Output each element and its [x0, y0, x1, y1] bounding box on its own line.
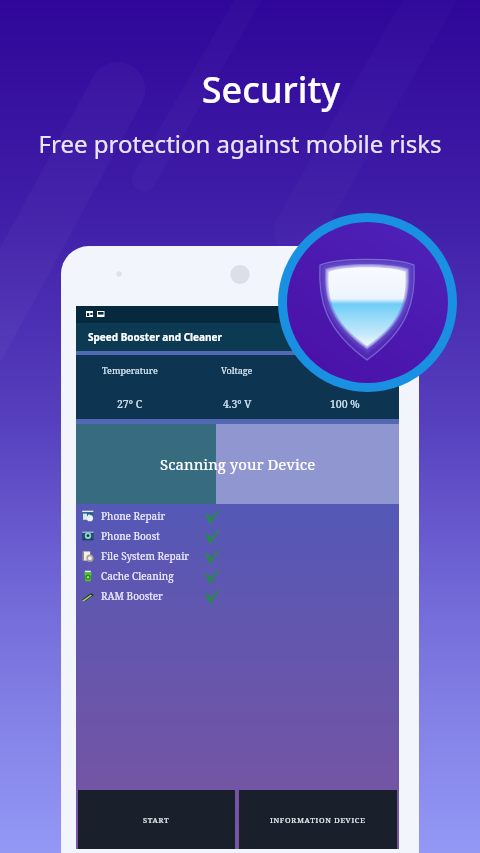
button[interactable]: Speed Booster and Cleaner: [76, 323, 399, 351]
button[interactable]: Security shield: [278, 213, 457, 392]
staticText: 4.3° V: [223, 397, 252, 411]
button[interactable]: RAM Booster: [76, 586, 399, 606]
button[interactable]: 100 %: [291, 355, 399, 419]
staticText: RAM Booster: [101, 589, 163, 603]
staticText: Temperature: [102, 364, 158, 376]
staticText: START: [143, 815, 170, 825]
staticText: Security: [31, 65, 480, 114]
staticText: Phone Repair: [101, 509, 166, 523]
staticText: 100 %: [330, 397, 360, 411]
button[interactable]: Temperature: [76, 355, 183, 419]
button[interactable]: Cache Cleaning: [76, 566, 399, 586]
staticText: Cache Cleaning: [101, 569, 174, 583]
button[interactable]: File System Repair: [76, 546, 399, 566]
staticText: Voltage: [221, 364, 253, 376]
staticText: Free protection against mobile risks: [0, 127, 480, 160]
staticText: Speed Booster and Cleaner: [88, 330, 222, 344]
staticText: Phone Boost: [101, 529, 160, 543]
button[interactable]: Phone Boost: [76, 526, 399, 546]
button[interactable]: Phone Repair: [76, 506, 399, 526]
staticText: File System Repair: [101, 549, 190, 563]
button[interactable]: INFORMATION DEVICE: [239, 790, 397, 849]
button[interactable]: Voltage: [183, 355, 291, 419]
button[interactable]: START: [78, 790, 235, 849]
staticText: 27° C: [117, 397, 143, 411]
staticText: INFORMATION DEVICE: [270, 815, 366, 825]
staticText: Scanning your Device: [160, 454, 316, 474]
